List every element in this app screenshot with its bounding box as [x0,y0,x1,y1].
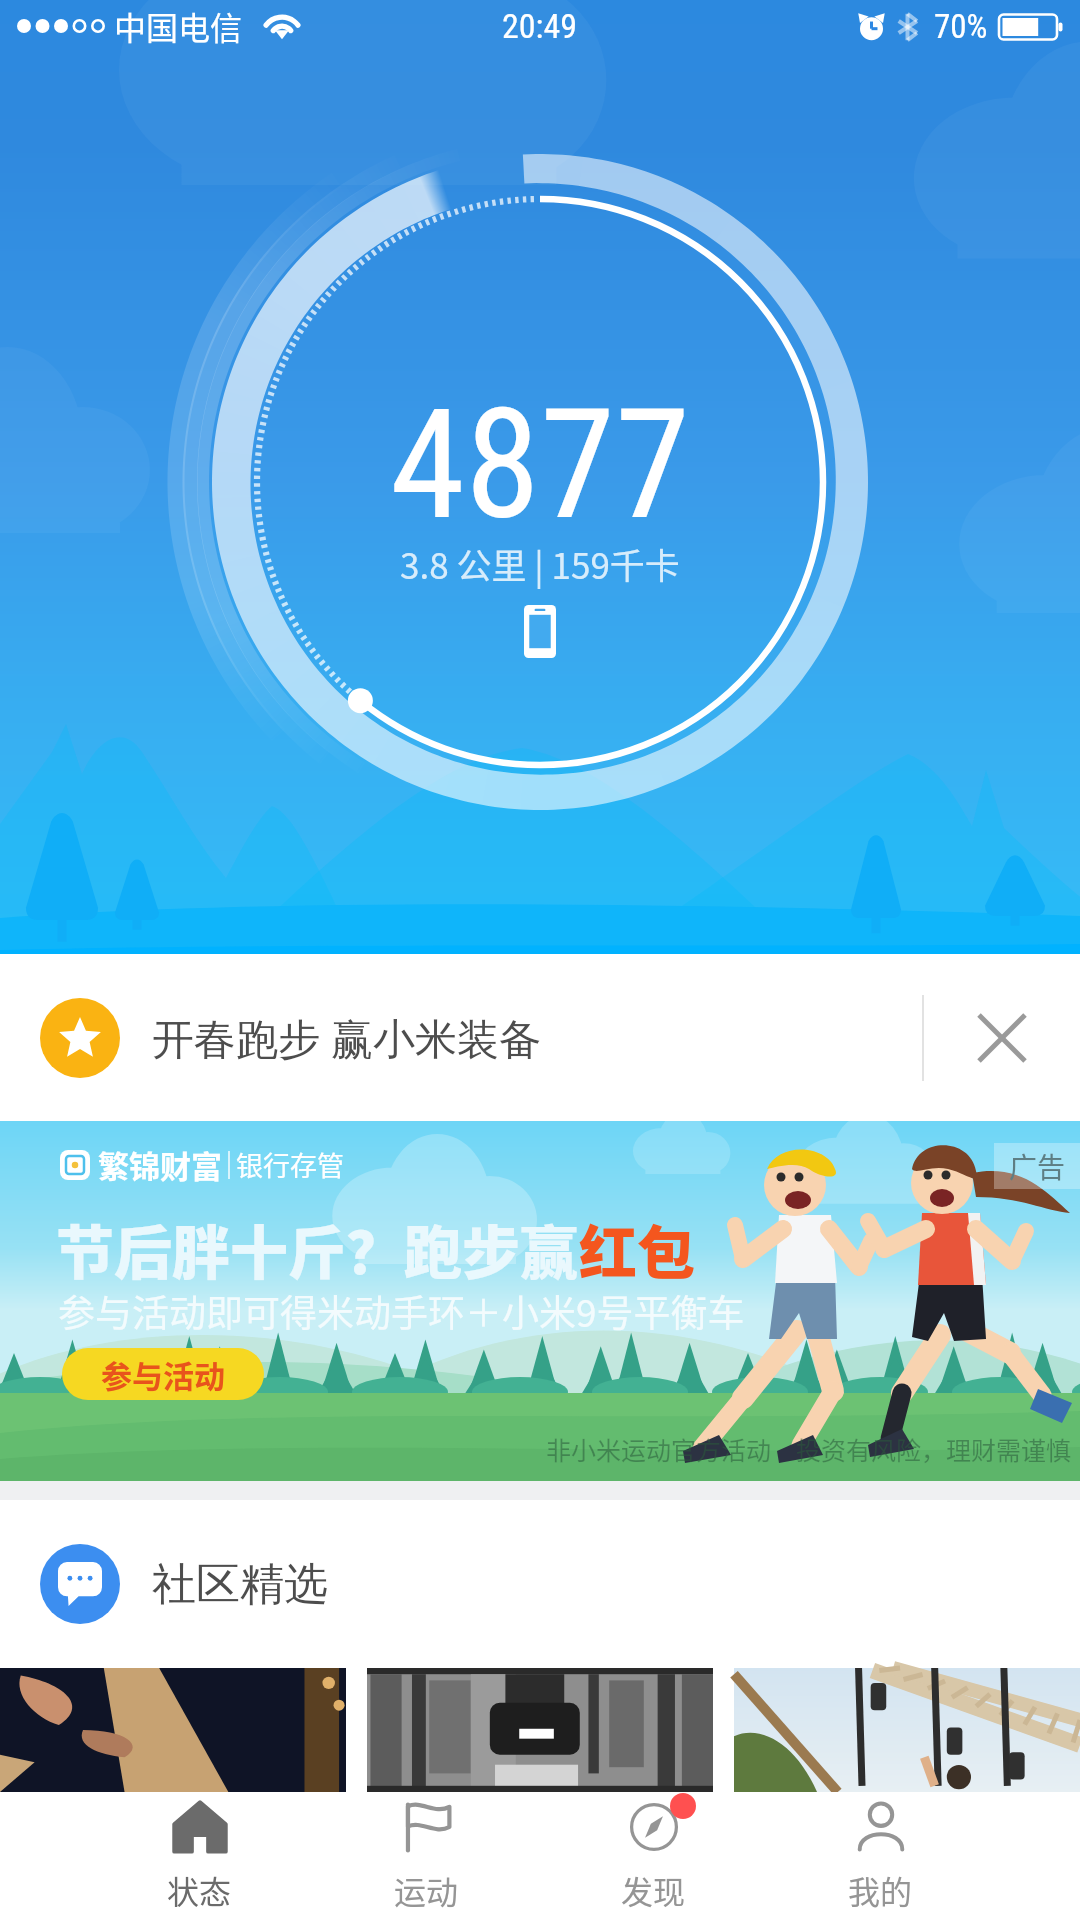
button[interactable]: 社区精选 [0,1500,1080,1668]
button[interactable]: 发现 [540,1792,767,1920]
staticText: 发现 [621,1867,686,1913]
staticText: 社区精选 [152,1557,328,1612]
button[interactable] [0,1668,346,1792]
staticText: 70% [934,7,988,46]
button[interactable]: 繁锦财富 [0,1121,1080,1481]
staticText: 银行存管 [236,1145,344,1184]
staticText: 参与活动即可得米动手环＋小米9号平衡车 [58,1284,745,1338]
staticText: 繁锦财富 [98,1142,222,1187]
button[interactable]: 我的 [767,1792,994,1920]
button[interactable]: Close [924,954,1080,1121]
staticText: 非小米运动官方活动 投资有风险，理财需谨慎 [546,1431,1072,1467]
button[interactable]: 开春跑步 赢小米装备 [0,954,1080,1121]
staticText: 广告 [1009,1146,1066,1187]
staticText: 开春跑步 赢小米装备 [152,1009,541,1066]
staticText: 参与活动 [101,1352,225,1397]
staticText: 20:49 [502,6,578,46]
staticText: 4877 [390,376,691,554]
staticText: 我的 [848,1867,913,1913]
staticText: 节后胖十斤？跑步赢 [56,1207,579,1291]
button[interactable]: 运动 [313,1792,540,1920]
staticText: 运动 [394,1867,459,1913]
staticText: 红包 [579,1207,696,1291]
staticText: 3.8 公里 | 159千卡 [400,538,680,589]
staticText: 中国电信 [114,3,243,49]
button[interactable]: 参与活动 [62,1348,264,1400]
staticText: 状态 [167,1867,232,1913]
button[interactable] [734,1668,1080,1792]
button[interactable] [367,1668,713,1792]
button[interactable]: 状态 [86,1792,313,1920]
